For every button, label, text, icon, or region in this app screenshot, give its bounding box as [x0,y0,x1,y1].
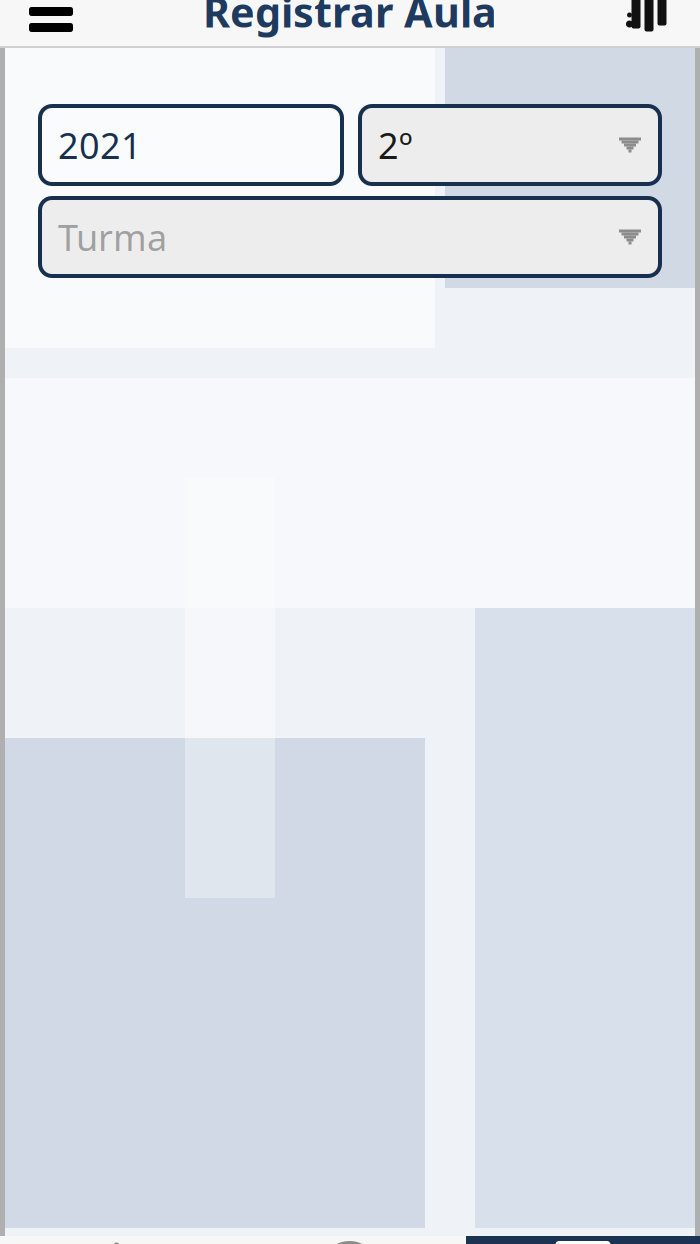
staticText: Registrar Aula [203,0,497,39]
button[interactable]: Grades [233,1236,466,1244]
button[interactable]: Notifications [0,1236,233,1244]
button[interactable]: Register class [466,1236,700,1244]
button[interactable]: 2021 [40,106,342,184]
button[interactable]: App logo [614,0,684,41]
staticText: 2º [378,121,413,169]
staticText: Turma [58,213,167,261]
staticText: 2021 [58,121,142,169]
button[interactable]: 2º [360,106,660,184]
button[interactable]: Menu [16,0,86,41]
button[interactable]: Turma [40,198,660,276]
